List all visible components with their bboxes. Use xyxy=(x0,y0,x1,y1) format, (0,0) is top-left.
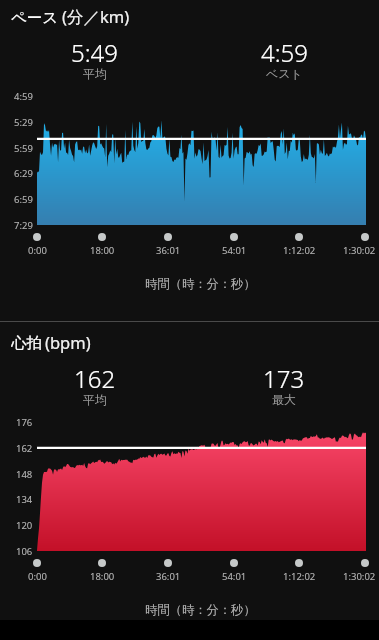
staticText: 120 xyxy=(16,519,33,532)
staticText: 心拍 xyxy=(11,333,42,353)
staticText: 1:30:02 xyxy=(343,570,376,583)
staticText: 162 xyxy=(16,442,33,455)
staticText: 176 xyxy=(16,416,33,429)
staticText: 5:49 xyxy=(71,36,118,69)
staticText: 1:12:02 xyxy=(283,244,316,257)
staticText: 0:00 xyxy=(28,244,47,257)
staticText: (分／km) xyxy=(62,5,130,28)
staticText: 134 xyxy=(16,493,33,506)
staticText: 36:01 xyxy=(156,244,181,257)
staticText: 173 xyxy=(263,362,305,395)
staticText: 時間（時：分：秒） xyxy=(145,276,256,291)
staticText: 18:00 xyxy=(90,570,115,583)
staticText: 6:59 xyxy=(14,193,33,206)
staticText: 54:01 xyxy=(222,570,247,583)
staticText: ベスト xyxy=(266,66,303,81)
staticText: 36:01 xyxy=(156,570,181,583)
staticText: 162 xyxy=(74,362,116,395)
staticText: 最大 xyxy=(272,392,296,407)
staticText: 0:00 xyxy=(28,570,47,583)
staticText: 4:59 xyxy=(261,36,308,69)
staticText: 平均 xyxy=(83,392,107,407)
staticText: 148 xyxy=(16,468,33,481)
staticText: 54:01 xyxy=(222,244,247,257)
staticText: 5:59 xyxy=(14,142,33,155)
staticText: (bpm) xyxy=(45,331,91,353)
staticText: 7:29 xyxy=(14,219,33,232)
staticText: 平均 xyxy=(83,66,107,81)
staticText: 1:30:02 xyxy=(343,244,376,257)
staticText: ペース xyxy=(11,8,59,28)
staticText: 18:00 xyxy=(90,244,115,257)
staticText: 106 xyxy=(16,545,33,558)
staticText: 5:29 xyxy=(14,116,33,129)
staticText: 時間（時：分：秒） xyxy=(145,602,256,617)
staticText: 4:59 xyxy=(14,90,33,103)
staticText: 6:29 xyxy=(14,167,33,180)
staticText: 1:12:02 xyxy=(283,570,316,583)
